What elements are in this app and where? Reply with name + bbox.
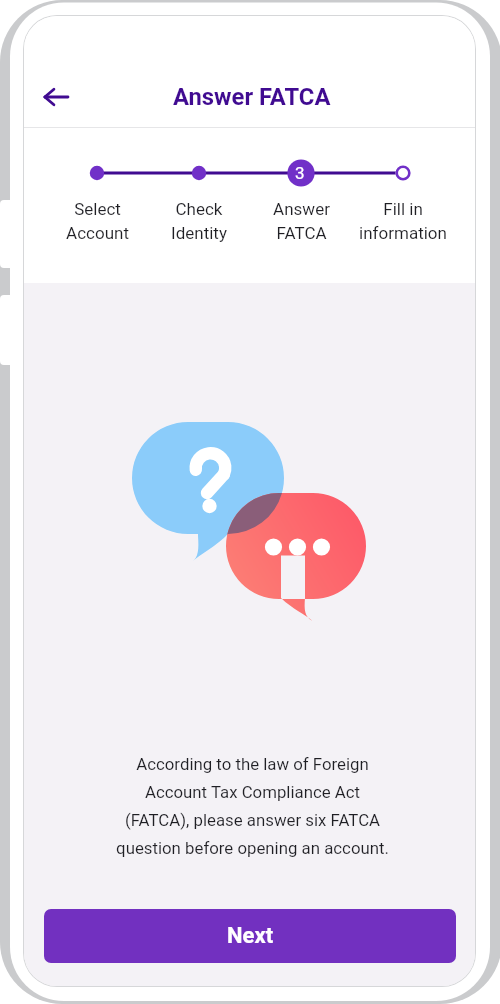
button[interactable]: Back [35,76,77,118]
button[interactable]: Next [44,909,456,963]
staticText: According to the law of Foreign Account … [116,754,389,859]
staticText: Answer FATCA [273,199,330,243]
staticText: Answer FATCA [173,83,331,111]
staticText: Fill in information [359,199,447,243]
staticText: Next [227,923,274,949]
staticText: Select Account [66,199,129,243]
staticText: Check Identity [171,199,227,243]
staticText: 3 [295,163,305,183]
